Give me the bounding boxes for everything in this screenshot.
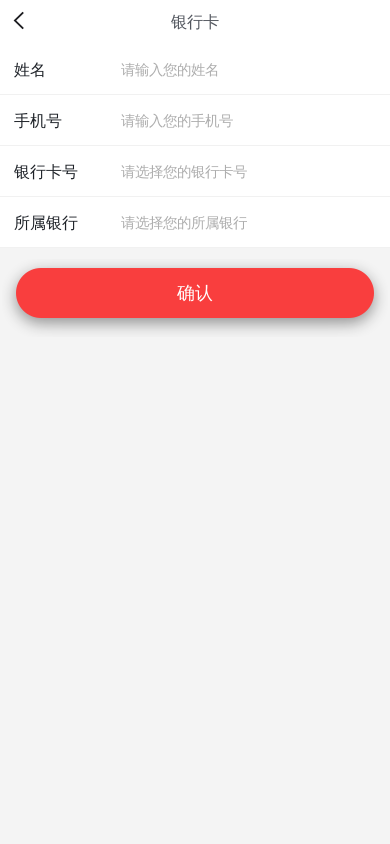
button[interactable]: 银行卡号 [0, 146, 390, 197]
staticText: 确认 [177, 282, 213, 304]
button[interactable]: 所属银行 [0, 197, 390, 248]
button[interactable]: 确认 [16, 268, 374, 318]
button[interactable]: 姓名 [0, 44, 390, 95]
staticText: 请选择您的所属银行 [121, 214, 247, 232]
button[interactable]: Back [0, 0, 40, 44]
staticText: 请选择您的银行卡号 [121, 163, 247, 181]
button[interactable]: 手机号 [0, 95, 390, 146]
staticText: 所属银行 [14, 213, 78, 233]
staticText: 请输入您的手机号 [121, 112, 233, 130]
staticText: 手机号 [14, 111, 62, 131]
staticText: 姓名 [14, 60, 46, 80]
staticText: 银行卡号 [14, 162, 78, 182]
staticText: 银行卡 [171, 12, 219, 32]
staticText: 请输入您的姓名 [121, 61, 219, 79]
